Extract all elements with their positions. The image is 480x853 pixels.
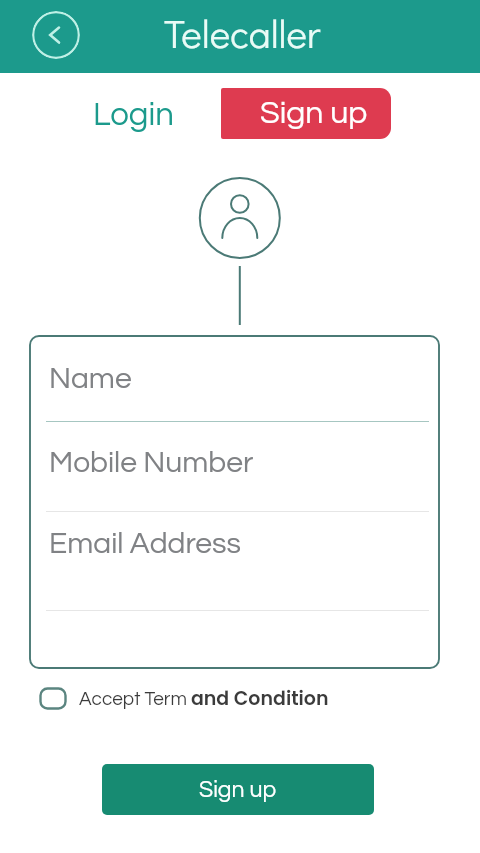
staticText: Email Address bbox=[49, 528, 241, 559]
staticText: Sign up bbox=[199, 778, 277, 802]
button[interactable]: Sign up bbox=[221, 88, 391, 139]
button[interactable]: Login bbox=[93, 98, 174, 132]
button[interactable]: Back bbox=[32, 11, 80, 59]
staticText: Login bbox=[93, 98, 174, 132]
staticText: Sign up bbox=[260, 97, 368, 130]
staticText: Telecaller bbox=[164, 7, 321, 58]
staticText: Name bbox=[49, 363, 132, 394]
button[interactable]: Accept Term and Condition bbox=[39, 684, 329, 712]
staticText: Mobile Number bbox=[49, 447, 254, 478]
button[interactable]: Sign up bbox=[102, 764, 374, 815]
staticText: Accept Term and Condition bbox=[79, 685, 329, 712]
